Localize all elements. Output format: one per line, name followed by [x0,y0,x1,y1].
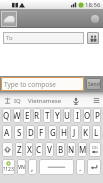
button[interactable]: T [43,108,51,123]
staticText: Y [55,110,60,121]
button[interactable]: J [70,125,79,140]
staticText: U [64,110,70,121]
staticText: E [25,110,30,121]
button[interactable]: B [56,142,65,157]
button[interactable]: A [2,125,12,140]
button[interactable]: Z [15,142,23,157]
staticText: R [34,110,40,121]
button[interactable]: space [39,159,74,175]
button[interactable]: O [83,108,91,123]
button[interactable]: shift [2,142,13,157]
button[interactable]: N [67,142,76,157]
staticText: To [6,34,13,42]
staticText: T [45,110,50,121]
staticText: P [95,110,100,121]
staticText: A [4,127,10,138]
staticText: I [76,110,79,121]
staticText: F [39,127,44,138]
staticText: D [28,127,34,138]
button[interactable]: num [2,159,15,175]
button[interactable]: Keyboard settings [0,94,14,107]
button[interactable]: H [59,125,68,140]
staticText: Z [17,144,22,155]
button[interactable]: L [92,125,101,140]
button[interactable]: Voice input [70,94,82,107]
button[interactable]: del [89,142,101,157]
button[interactable]: W [13,108,21,123]
button[interactable]: V [45,142,54,157]
button[interactable]: K [81,125,90,140]
staticText: O [84,110,91,121]
button[interactable]: X [25,142,33,157]
staticText: IQ [14,97,21,105]
staticText: ?123 [3,166,14,173]
button[interactable]: lang [17,159,26,175]
staticText: L [94,127,99,138]
button[interactable]: C [35,142,43,157]
button[interactable]: M [78,142,87,157]
staticText: X [27,144,32,155]
button[interactable]: Q [2,108,11,123]
button[interactable]: To [3,32,84,44]
button[interactable]: Options [91,15,99,23]
staticText: Vietnamese [28,97,62,105]
staticText: J [73,127,76,138]
staticText: W [13,110,21,121]
staticText: B [58,144,64,155]
button[interactable]: enter [87,159,101,175]
button[interactable]: G [48,125,57,140]
button[interactable]: New message [1,11,17,27]
button[interactable]: Type to compose [1,77,84,91]
button[interactable]: F [37,125,46,140]
button[interactable]: U [63,108,71,123]
staticText: V [47,144,52,155]
button[interactable]: D [26,125,35,140]
staticText: H [61,127,67,138]
button[interactable]: E [23,108,31,123]
staticText: 18:56 [85,1,101,9]
button[interactable]: Send [86,78,101,90]
button[interactable]: More options [90,94,103,107]
staticText: . [79,162,82,173]
button[interactable]: P [93,108,101,123]
staticText: , [31,162,34,173]
staticText: S [17,127,22,138]
button[interactable]: , [28,159,37,175]
button[interactable]: . [76,159,85,175]
button[interactable]: Pick contacts [87,32,99,44]
staticText: DEL [92,145,99,150]
staticText: K [83,127,89,138]
button[interactable]: S [14,125,24,140]
staticText: M [79,144,87,155]
staticText: Send [88,81,100,88]
staticText: C [36,144,42,155]
staticText: Type to compose [4,80,56,89]
button[interactable]: I [73,108,81,123]
staticText: VN [18,164,25,171]
button[interactable]: R [33,108,41,123]
staticText: G [50,127,56,138]
staticText: Q [3,110,10,121]
staticText: N [68,144,75,155]
button[interactable]: Y [53,108,61,123]
